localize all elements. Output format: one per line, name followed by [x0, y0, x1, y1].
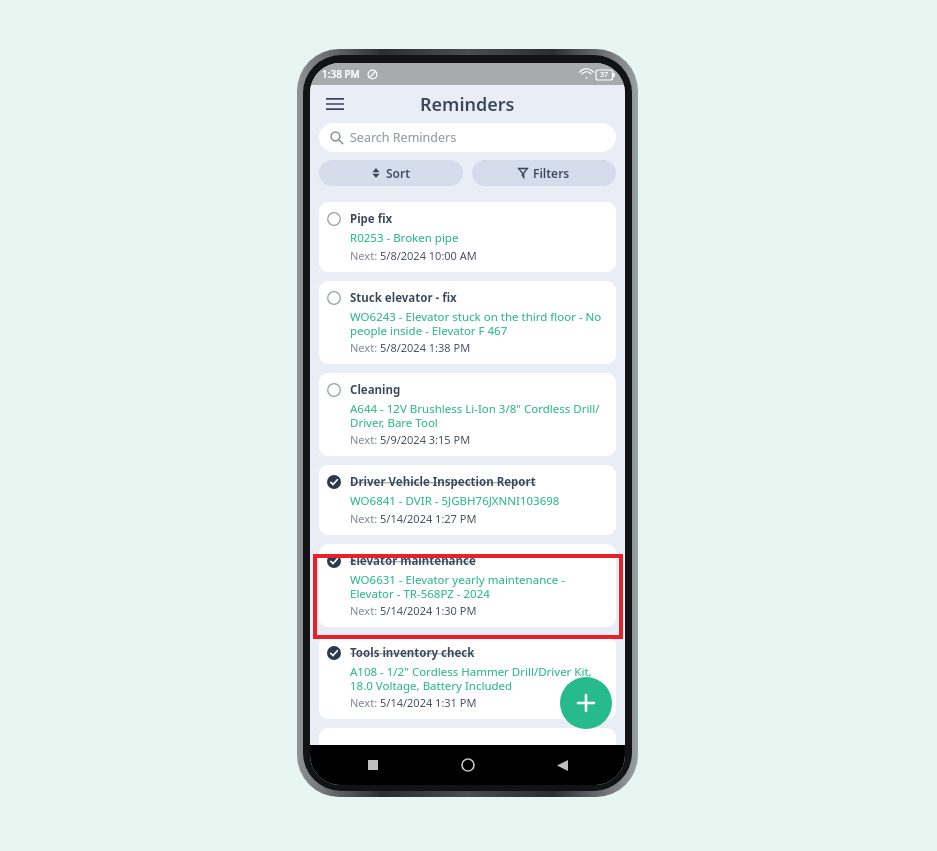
- button[interactable]: Sort: [319, 160, 463, 186]
- staticText: 5/8/2024 1:38 PM: [380, 340, 471, 355]
- button[interactable]: Elevator maintenance: [319, 544, 616, 627]
- button[interactable]: Search Reminders: [319, 123, 616, 152]
- button[interactable]: Back: [549, 752, 575, 778]
- button[interactable]: Menu: [320, 89, 350, 119]
- staticText: Next:: [350, 603, 380, 618]
- staticText: 1:38 PM: [322, 67, 360, 81]
- staticText: Tools inventory check: [350, 645, 475, 661]
- staticText: 5/14/2024 1:30 PM: [380, 603, 477, 618]
- button[interactable]: Cleaning: [319, 373, 616, 456]
- staticText: 37: [600, 70, 609, 80]
- staticText: Next:: [350, 695, 380, 710]
- staticText: WO6243 - Elevator stuck on the third flo…: [350, 309, 606, 338]
- staticText: Cleaning: [350, 382, 401, 398]
- staticText: 5/14/2024 1:27 PM: [380, 511, 477, 526]
- button[interactable]: Tools inventory check: [319, 636, 616, 719]
- button[interactable]: Home: [455, 752, 481, 778]
- button[interactable]: Recent apps: [360, 752, 386, 778]
- staticText: R0253 - Broken pipe: [350, 230, 459, 246]
- staticText: 5/14/2024 1:31 PM: [380, 695, 477, 710]
- staticText: Sort: [386, 165, 411, 181]
- staticText: Search Reminders: [350, 129, 457, 146]
- staticText: WO6631 - Elevator yearly maintenance - E…: [350, 572, 606, 601]
- button[interactable]: Stuck elevator - fix: [319, 281, 616, 364]
- button[interactable]: Driver Vehicle Inspection Report: [319, 465, 616, 535]
- button[interactable]: [319, 728, 616, 745]
- staticText: Stuck elevator - fix: [350, 290, 457, 306]
- staticText: Driver Vehicle Inspection Report: [350, 474, 536, 490]
- staticText: Next:: [350, 248, 380, 263]
- staticText: Reminders: [420, 92, 515, 117]
- staticText: A644 - 12V Brushless Li-Ion 3/8" Cordles…: [350, 401, 606, 430]
- staticText: Pipe fix: [350, 211, 393, 227]
- staticText: WO6841 - DVIR - 5JGBH76JXNNI103698: [350, 493, 560, 509]
- staticText: 5/8/2024 10:00 AM: [380, 248, 477, 263]
- staticText: Next:: [350, 511, 380, 526]
- button[interactable]: Add reminder: [560, 677, 612, 729]
- staticText: Filters: [533, 165, 570, 181]
- staticText: 5/9/2024 3:15 PM: [380, 432, 471, 447]
- button[interactable]: Pipe fix: [319, 202, 616, 272]
- staticText: Next:: [350, 340, 380, 355]
- button[interactable]: Filters: [472, 160, 616, 186]
- staticText: Elevator maintenance: [350, 553, 476, 569]
- staticText: Next:: [350, 432, 380, 447]
- staticText: A108 - 1/2" Cordless Hammer Drill/Driver…: [350, 664, 606, 693]
